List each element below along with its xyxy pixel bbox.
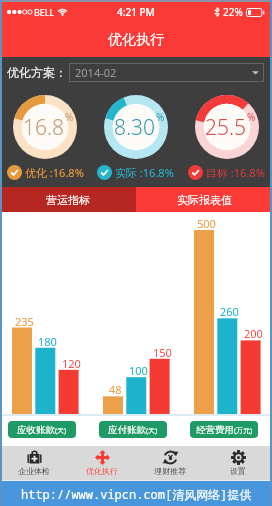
staticText: 应付账款 [108,424,146,436]
staticText: 营运指标 [46,193,90,207]
staticText: 4:21 PM [117,5,155,19]
staticText: 目标 :16.8% [206,165,265,180]
staticText: 应收账款 [17,424,55,436]
staticText: 48 [109,382,122,397]
staticText: (万元) [234,426,253,436]
staticText: 设置 [230,466,246,476]
staticText: (天) [146,426,158,436]
staticText: 优化方案： [7,65,67,80]
button[interactable]: 企业体检 [0,446,68,480]
staticText: 8.30 [114,113,156,142]
button[interactable]: 应付账款 [99,421,167,438]
staticText: 实际 :16.8% [115,165,174,180]
staticText: 2014-02 [75,65,117,80]
staticText: BELL [34,6,55,18]
staticText: % [65,110,74,124]
staticText: 200 [244,326,263,341]
staticText: 优化执行 [108,31,164,49]
staticText: http://www.vipcn.com[清风网络]提供 [21,486,252,502]
button[interactable]: 理财推荐 [136,446,204,480]
staticText: 260 [220,304,239,319]
staticText: 150 [153,345,172,360]
staticText: 经营费用 [196,424,234,436]
staticText: 企业体检 [18,466,50,476]
staticText: % [156,110,165,124]
staticText: 优化 :16.8% [25,165,84,180]
staticText: 实际报表值 [177,193,232,207]
staticText: 120 [62,356,81,371]
button[interactable]: 应收账款 [8,421,76,438]
button[interactable]: 设置 [204,446,272,480]
staticText: 25.5 [205,113,247,142]
button[interactable]: 经营费用 [190,421,258,438]
staticText: (天) [55,426,67,436]
staticText: 180 [38,334,57,349]
staticText: % [247,110,256,124]
staticText: 优化执行 [86,466,118,476]
staticText: 100 [129,363,148,378]
staticText: 22% [223,5,243,19]
button[interactable]: 优化执行 [68,446,136,480]
button[interactable]: 营运指标 [0,187,136,212]
staticText: 16.8 [23,113,65,142]
staticText: 500 [197,216,216,231]
button[interactable]: 2014-02 [69,63,264,82]
staticText: 理财推荐 [154,466,186,476]
staticText: 235 [15,314,34,329]
button[interactable]: 实际报表值 [136,187,272,212]
